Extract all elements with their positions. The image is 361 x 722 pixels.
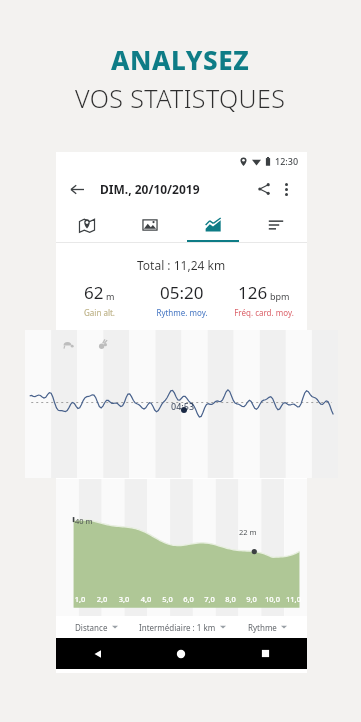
staticText: 3,0 bbox=[114, 594, 134, 604]
staticText: 8,0 bbox=[221, 594, 240, 604]
staticText: m bbox=[106, 290, 115, 302]
button[interactable]: Map bbox=[56, 208, 118, 242]
staticText: 22 m bbox=[239, 527, 257, 537]
staticText: 5,0 bbox=[158, 594, 177, 604]
button[interactable]: Back bbox=[56, 638, 139, 669]
staticText: Rythme. moy. bbox=[156, 307, 208, 318]
button[interactable]: Share bbox=[253, 178, 275, 200]
button[interactable]: Recent apps bbox=[223, 638, 307, 669]
button[interactable]: Intermédiaire : 1 km bbox=[131, 616, 233, 638]
button[interactable]: Distance bbox=[62, 616, 131, 638]
button[interactable]: Rythme bbox=[233, 616, 301, 638]
staticText: 1,0 bbox=[70, 594, 90, 604]
button[interactable]: Laps bbox=[244, 208, 307, 242]
button[interactable]: Back bbox=[66, 178, 88, 200]
staticText: Distance bbox=[75, 622, 108, 633]
staticText: 04:53 bbox=[171, 400, 195, 412]
button[interactable]: More options bbox=[275, 178, 297, 200]
staticText: 2,0 bbox=[92, 594, 112, 604]
staticText: Intermédiaire : 1 km bbox=[139, 622, 216, 633]
staticText: 12:30 bbox=[275, 155, 299, 167]
button[interactable]: 04:53 bbox=[25, 330, 338, 478]
button[interactable]: Photos bbox=[118, 208, 181, 242]
staticText: 10,0 bbox=[263, 594, 282, 604]
staticText: ANALYSEZ bbox=[111, 42, 250, 77]
staticText: 40 m bbox=[75, 516, 93, 526]
button[interactable]: Home bbox=[139, 638, 223, 669]
button[interactable]: Charts bbox=[181, 208, 244, 242]
staticText: DIM., 20/10/2019 bbox=[100, 181, 200, 197]
staticText: 7,0 bbox=[200, 594, 219, 604]
staticText: bpm bbox=[270, 290, 290, 302]
button[interactable]: Total : 11,24 km bbox=[58, 249, 305, 321]
staticText: 4,0 bbox=[136, 594, 156, 604]
staticText: 6,0 bbox=[179, 594, 198, 604]
staticText: Fréq. card. moy. bbox=[234, 307, 294, 318]
button[interactable]: 40 m bbox=[56, 479, 307, 616]
staticText: Gain alt. bbox=[84, 307, 115, 318]
staticText: 62 bbox=[84, 281, 104, 304]
staticText: 9,0 bbox=[242, 594, 261, 604]
staticText: VOS STATISTQUES bbox=[75, 81, 286, 115]
staticText: 05:20 bbox=[160, 281, 204, 304]
staticText: Total : 11,24 km bbox=[137, 257, 226, 273]
staticText: 11,0 bbox=[284, 594, 303, 604]
staticText: Rythme bbox=[248, 622, 277, 633]
staticText: 126 bbox=[238, 281, 268, 304]
